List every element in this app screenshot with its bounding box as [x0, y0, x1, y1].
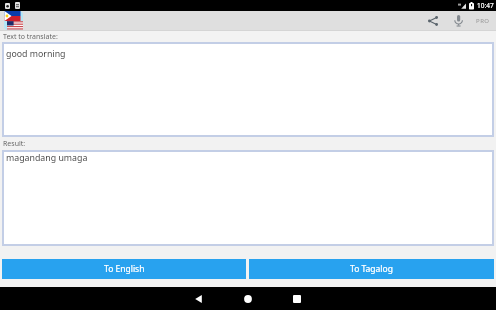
staticText: To English: [104, 263, 145, 275]
button[interactable]: [428, 16, 438, 26]
button[interactable]: [453, 15, 464, 27]
button[interactable]: PRO: [476, 17, 490, 25]
button[interactable]: [195, 295, 203, 303]
button[interactable]: To English: [2, 259, 246, 279]
staticText: good morning: [6, 48, 66, 60]
staticText: Result:: [3, 139, 26, 149]
staticText: magandang umaga: [6, 152, 88, 164]
button[interactable]: [293, 295, 301, 303]
staticText: Text to translate:: [3, 32, 58, 42]
button[interactable]: To Tagalog: [249, 259, 494, 279]
button[interactable]: [244, 295, 252, 303]
button[interactable]: good morning: [2, 42, 494, 137]
button[interactable]: magandang umaga: [2, 150, 494, 246]
staticText: 10:47: [477, 1, 494, 10]
staticText: To Tagalog: [350, 263, 393, 275]
button[interactable]: [4, 11, 23, 30]
